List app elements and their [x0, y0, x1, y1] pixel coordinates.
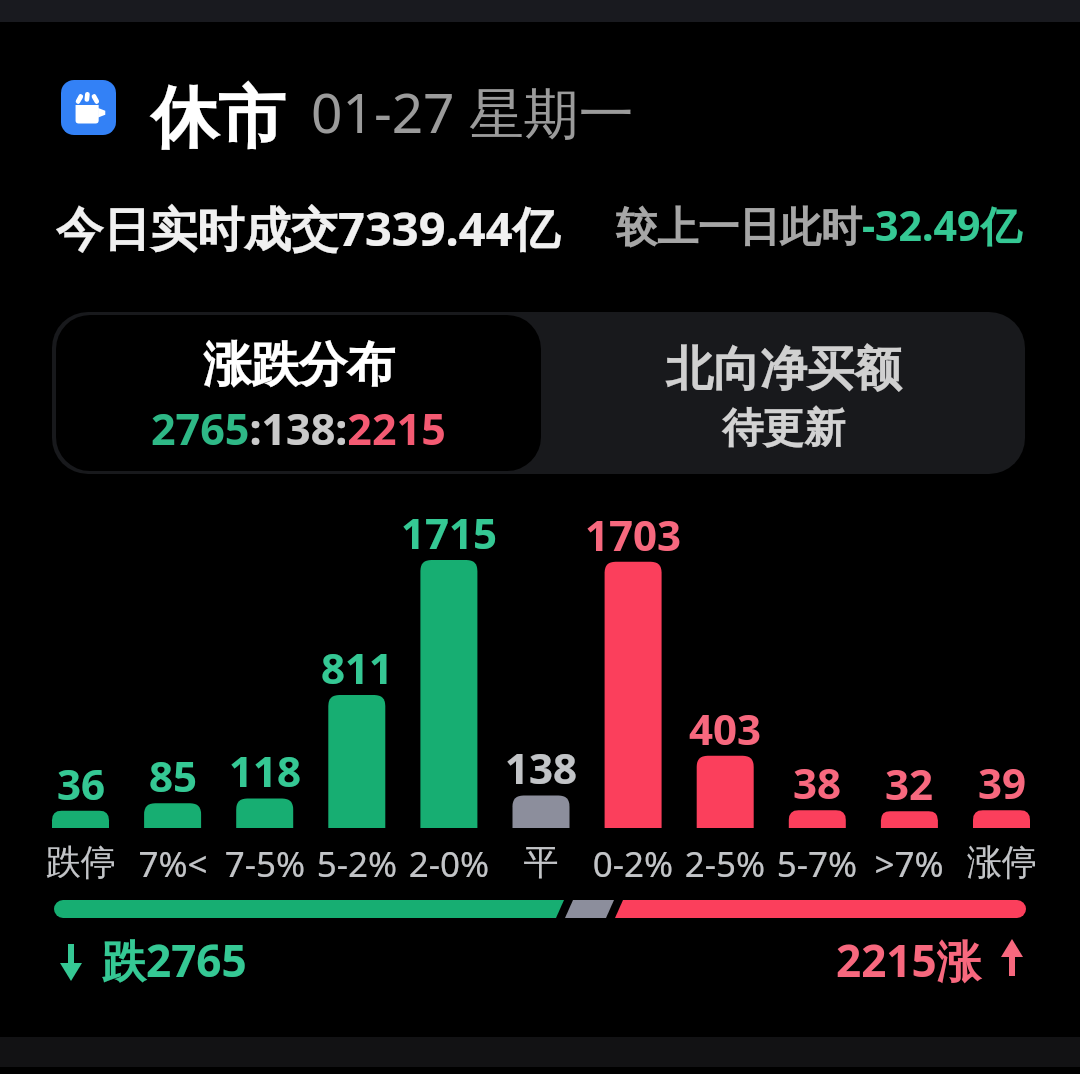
staticText: 85	[103, 747, 243, 804]
staticText: 2-5%	[655, 840, 795, 888]
staticText: 7%<	[103, 840, 243, 888]
staticText: 较上一日此时-32.49亿	[616, 197, 1022, 253]
button[interactable]: Market closed	[61, 80, 116, 135]
button[interactable]: 北向净买额	[541, 312, 1025, 474]
other: Advancing	[995, 935, 1029, 985]
staticText: 休市	[151, 76, 285, 160]
staticText: 38	[747, 754, 887, 811]
staticText: 39	[932, 754, 1072, 811]
staticText: 403	[655, 700, 795, 757]
staticText: 1703	[563, 506, 703, 563]
staticText: 1715	[379, 504, 519, 561]
staticText: 北向净买额	[666, 340, 901, 399]
staticText: 0-2%	[563, 840, 703, 888]
staticText: 今日实时成交7339.44亿	[56, 196, 560, 260]
staticText: 跌停	[11, 840, 151, 884]
staticText: 涨跌分布	[203, 335, 395, 395]
staticText: 01-27 星期一	[311, 74, 634, 149]
staticText: 待更新	[722, 403, 845, 455]
staticText: >7%	[839, 840, 979, 888]
staticText: 5-2%	[287, 840, 427, 888]
staticText: 2765:138:2215	[151, 399, 446, 458]
staticText: 811	[287, 639, 427, 696]
staticText: 36	[11, 755, 151, 812]
button[interactable]: Declining	[54, 930, 247, 990]
staticText: 32	[839, 755, 979, 812]
button[interactable]: 2215涨	[836, 930, 1029, 990]
staticText: 5-7%	[747, 840, 887, 888]
staticText: 跌2765	[102, 930, 247, 990]
staticText: 7-5%	[195, 840, 335, 888]
staticText: 118	[195, 742, 335, 799]
button[interactable]: 涨跌分布	[56, 315, 541, 471]
staticText: 2-0%	[379, 840, 519, 888]
other: Declining	[54, 935, 88, 985]
staticText: 138	[471, 739, 611, 796]
staticText: 涨停	[932, 840, 1072, 884]
staticText: 2215涨	[836, 930, 981, 990]
staticText: 平	[471, 840, 611, 884]
